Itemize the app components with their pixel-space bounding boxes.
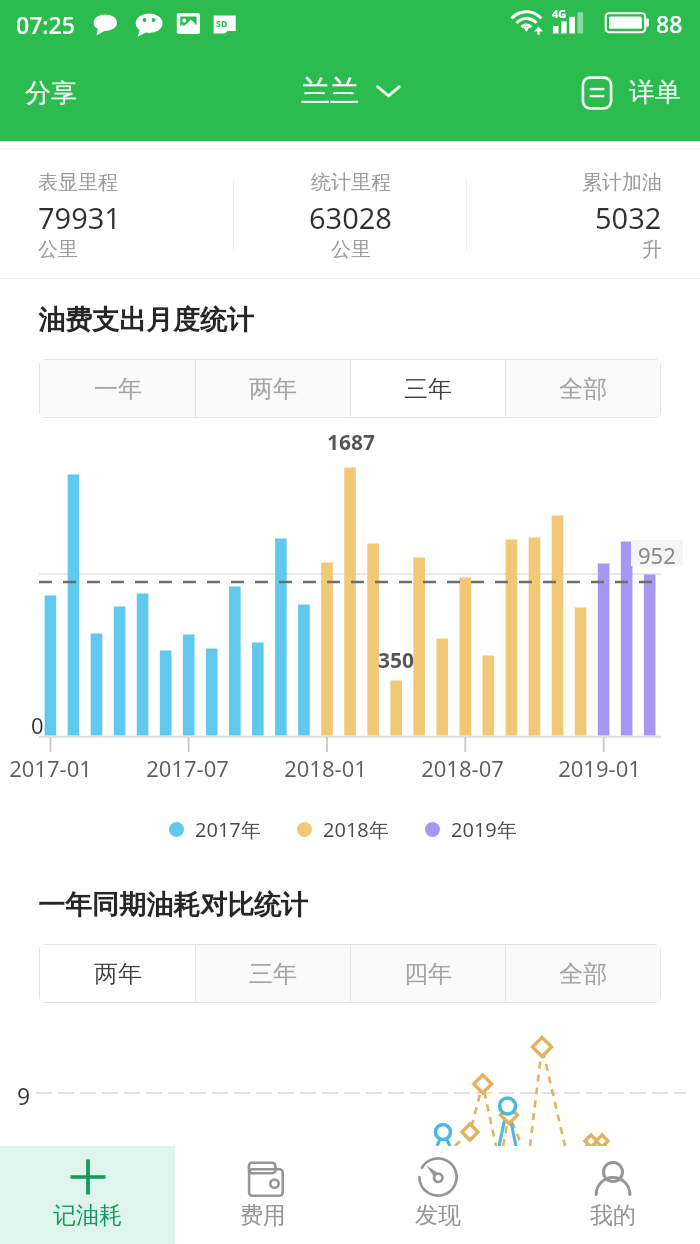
staticText: 详单	[629, 76, 681, 109]
staticText: 两年	[249, 374, 297, 404]
staticText: 我的	[590, 1201, 636, 1230]
staticText: 全部	[559, 374, 607, 404]
staticText: 2019-01	[558, 753, 641, 783]
staticText: 2019年	[451, 816, 517, 843]
staticText: 记油耗	[53, 1201, 122, 1230]
staticText: 累计加油	[582, 170, 662, 195]
staticText: 表显里程	[38, 170, 118, 195]
staticText: 350	[378, 646, 415, 675]
staticText: 公里	[331, 237, 371, 262]
staticText: 四年	[404, 959, 452, 989]
staticText: 统计里程	[311, 170, 391, 195]
staticText: 发现	[415, 1201, 461, 1230]
staticText: 公里	[38, 237, 78, 262]
button[interactable]: 四年	[351, 945, 505, 1002]
button[interactable]: 费用	[175, 1146, 350, 1244]
staticText: 一年	[94, 374, 142, 404]
staticText: 全部	[559, 959, 607, 989]
button[interactable]: 三年	[351, 360, 505, 417]
button[interactable]: 两年	[196, 360, 350, 417]
staticText: 2018-07	[421, 753, 504, 783]
staticText: 88	[656, 8, 683, 39]
staticText: 三年	[249, 959, 297, 989]
staticText: 2017年	[195, 816, 261, 843]
staticText: 4G	[552, 6, 567, 21]
staticText: 5032	[595, 198, 662, 237]
button[interactable]: 一年	[40, 360, 195, 417]
staticText: 升	[642, 237, 662, 262]
staticText: 三年	[404, 374, 452, 404]
button[interactable]: 详单	[563, 48, 700, 137]
staticText: 2018-01	[284, 753, 367, 783]
button[interactable]: 我的	[525, 1146, 700, 1244]
button[interactable]: 三年	[196, 945, 350, 1002]
staticText: 分享	[25, 77, 77, 110]
staticText: 0	[31, 710, 44, 740]
button[interactable]: 全部	[506, 360, 660, 417]
staticText: 兰兰	[301, 73, 359, 110]
staticText: 费用	[240, 1201, 286, 1230]
button[interactable]: 全部	[506, 945, 660, 1002]
staticText: 油费支出月度统计	[38, 303, 254, 337]
staticText: 两年	[94, 959, 142, 989]
button[interactable]: 分享	[0, 49, 102, 138]
staticText: 2018年	[323, 816, 389, 843]
staticText: 2017-07	[146, 753, 229, 783]
staticText: SD	[216, 17, 228, 29]
button[interactable]: 两年	[40, 945, 195, 1002]
button[interactable]: 发现	[350, 1146, 525, 1244]
button[interactable]: 兰兰	[291, 47, 411, 136]
staticText: 9	[17, 1080, 31, 1111]
staticText: 2017-01	[9, 753, 92, 783]
staticText: 07:25	[16, 9, 75, 40]
staticText: 一年同期油耗对比统计	[38, 888, 308, 922]
staticText: 952	[638, 540, 676, 566]
staticText: 79931	[38, 198, 121, 237]
button[interactable]: 记油耗	[0, 1146, 175, 1244]
staticText: 1687	[327, 428, 376, 457]
staticText: 63028	[309, 198, 392, 237]
